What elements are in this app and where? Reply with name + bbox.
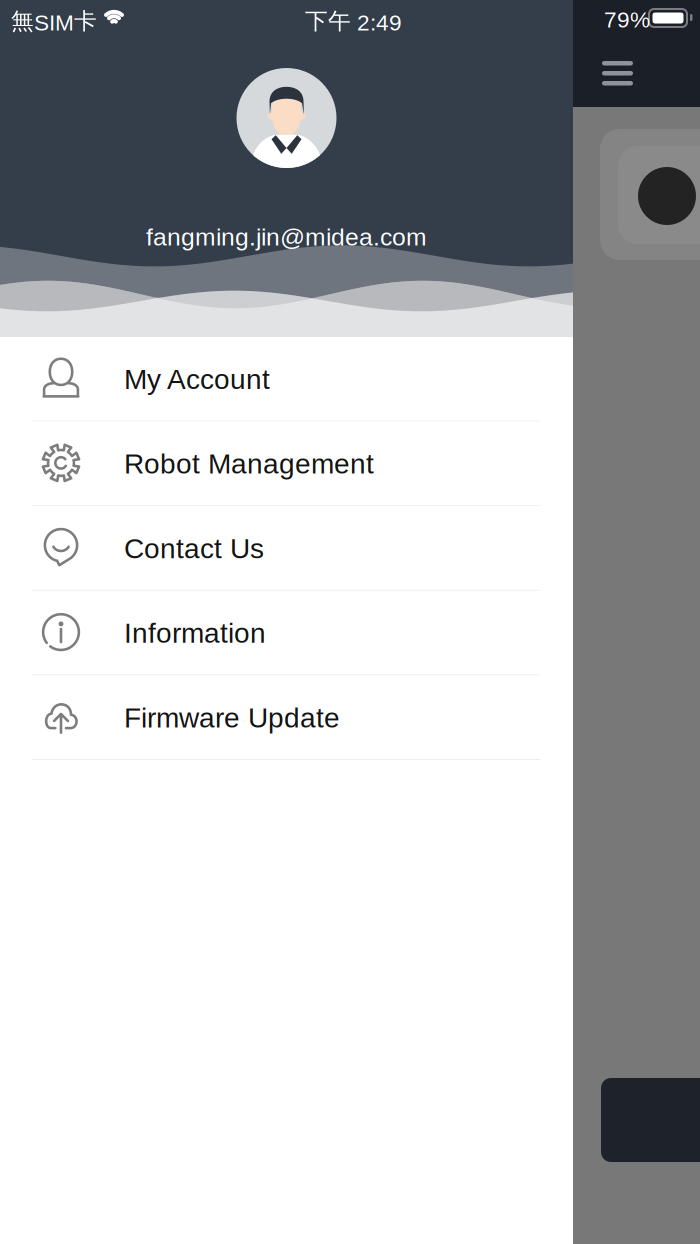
button[interactable]: Menu [587, 45, 649, 97]
staticText: Firmware Update [124, 702, 340, 733]
staticText: 無SIM卡 [11, 7, 97, 36]
button[interactable]: Contact Us [0, 506, 573, 591]
staticText: Information [124, 617, 266, 649]
button[interactable]: Robot Management [0, 422, 573, 506]
staticText: 79% [604, 7, 650, 32]
staticText: Robot Management [124, 448, 374, 480]
staticText: My Account [124, 364, 270, 395]
button[interactable]: My Account [0, 337, 573, 422]
button[interactable]: Firmware Update [0, 675, 573, 760]
staticText: 下午 2:49 [305, 7, 402, 36]
staticText: fangming.jin@midea.com [146, 223, 427, 251]
staticText: Contact Us [124, 533, 264, 564]
button[interactable]: Information [0, 591, 573, 675]
